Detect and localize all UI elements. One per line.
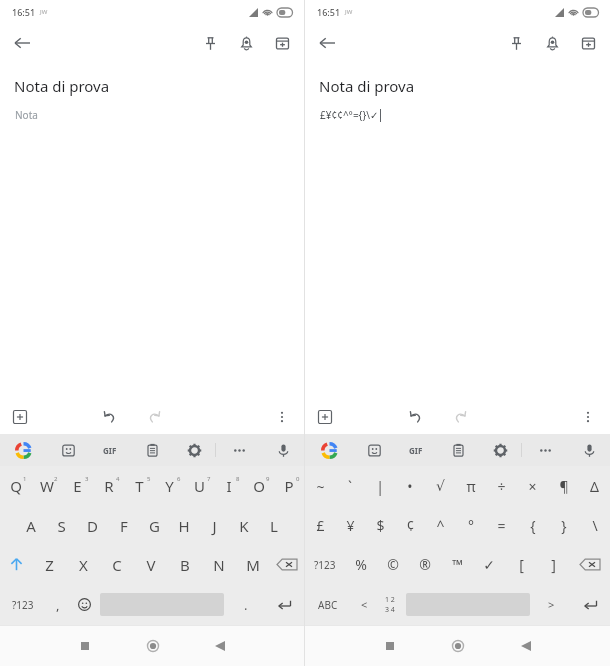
button[interactable]: Pin [502,29,530,57]
button[interactable]: Back [509,629,543,663]
button[interactable]: { [517,506,548,545]
button[interactable]: Archive [574,29,602,57]
button[interactable]: Y [154,466,184,506]
button[interactable]: Google Search [305,434,353,466]
button[interactable]: ?123 [0,584,45,625]
button[interactable]: £ [305,506,335,545]
button[interactable]: Back [203,629,237,663]
button[interactable]: ~ [305,466,335,506]
button[interactable]: GIF [395,434,437,466]
button[interactable]: Q [0,466,31,506]
button[interactable]: Pin [196,29,224,57]
button[interactable]: Enter [264,584,304,625]
button[interactable]: W [31,466,62,506]
button[interactable]: Undo [96,403,124,431]
button[interactable]: > [533,584,570,625]
button[interactable]: ✓ [473,545,505,584]
button[interactable]: GIF [89,434,131,466]
button[interactable]: ?123 [305,545,345,584]
button[interactable]: Undo [402,403,430,431]
button[interactable]: ABC [305,584,351,625]
button[interactable]: Voice input [568,434,610,466]
button[interactable]: 1 2 [377,584,403,625]
button[interactable]: Backspace [270,545,304,584]
button[interactable]: | [365,466,395,506]
button[interactable]: Clipboard [131,434,173,466]
button[interactable]: O [244,466,274,506]
button[interactable]: Shift [0,545,33,584]
button[interactable]: ° [455,506,486,545]
button[interactable]: I [214,466,244,506]
button[interactable]: Recents [373,629,407,663]
button[interactable]: Clipboard [437,434,479,466]
button[interactable]: Settings [173,434,215,466]
button[interactable]: ` [335,466,365,506]
button[interactable]: ® [409,545,441,584]
button[interactable]: Add [311,403,339,431]
button[interactable]: R [93,466,124,506]
button[interactable]: Back [6,27,38,59]
button[interactable]: J [199,506,229,545]
button[interactable]: $ [365,506,395,545]
button[interactable]: ] [537,545,569,584]
button[interactable]: Reminder [232,29,260,57]
button[interactable]: More [522,434,568,466]
button[interactable]: More options [268,403,296,431]
button[interactable]: Backspace [569,545,610,584]
button[interactable]: Z [33,545,66,584]
button[interactable]: E [62,466,93,506]
button[interactable]: S [46,506,77,545]
button[interactable]: ¢ [395,506,425,545]
button[interactable]: © [377,545,409,584]
button[interactable]: Add [6,403,34,431]
button[interactable]: Redo [446,403,474,431]
button[interactable]: Archive [268,29,296,57]
button[interactable]: L [259,506,289,545]
button[interactable]: , [45,584,71,625]
button[interactable]: Back [311,27,343,59]
button[interactable]: Home [441,629,475,663]
button[interactable]: \ [579,506,610,545]
button[interactable]: C [100,545,134,584]
button[interactable]: More [216,434,262,466]
button[interactable]: Recents [68,629,102,663]
button[interactable]: = [486,506,517,545]
button[interactable]: More options [574,403,602,431]
button[interactable]: • [395,466,425,506]
button[interactable]: [ [505,545,537,584]
button[interactable]: Stickers [353,434,395,466]
button[interactable]: Emoji [71,584,97,625]
button[interactable]: X [66,545,100,584]
button[interactable]: Redo [140,403,168,431]
button[interactable]: ¥ [335,506,365,545]
button[interactable]: U [184,466,214,506]
button[interactable]: N [202,545,236,584]
button[interactable]: D [77,506,108,545]
button[interactable]: Google Search [0,434,47,466]
button[interactable]: < [351,584,377,625]
button[interactable]: A [15,506,46,545]
button[interactable]: Stickers [47,434,89,466]
button[interactable]: ¶ [548,466,579,506]
button[interactable]: M [236,545,270,584]
button[interactable]: T [124,466,154,506]
button[interactable]: Enter [570,584,610,625]
button[interactable]: V [134,545,168,584]
button[interactable]: F [108,506,139,545]
button[interactable]: ÷ [486,466,517,506]
button[interactable]: Home [136,629,170,663]
button[interactable]: % [345,545,377,584]
button[interactable]: Reminder [538,29,566,57]
button[interactable]: . [227,584,264,625]
button[interactable]: G [139,506,169,545]
button[interactable]: Voice input [262,434,304,466]
button[interactable]: Δ [579,466,610,506]
button[interactable]: √ [425,466,455,506]
button[interactable]: P [274,466,304,506]
button[interactable]: } [548,506,579,545]
button[interactable]: H [169,506,199,545]
button[interactable]: × [517,466,548,506]
button[interactable]: π [455,466,486,506]
